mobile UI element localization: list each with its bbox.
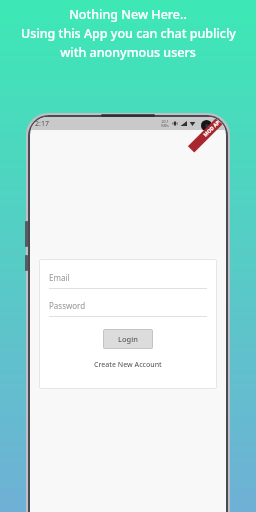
- button[interactable]: Login: [103, 329, 153, 349]
- staticText: MOD APK: [202, 117, 224, 138]
- staticText: 20.1 KB/s: [161, 119, 169, 128]
- button[interactable]: Create New Account: [88, 358, 168, 372]
- staticText: 2:17: [35, 119, 49, 129]
- staticText: Password: [49, 300, 86, 311]
- staticText: with anonymous users: [60, 44, 196, 61]
- button[interactable]: Password: [49, 300, 207, 317]
- staticText: Using this App you can chat publicly: [21, 25, 236, 42]
- staticText: Nothing New Here..: [69, 6, 187, 23]
- button[interactable]: Email: [49, 272, 207, 289]
- staticText: Create New Account: [94, 360, 162, 370]
- staticText: Login: [118, 334, 138, 344]
- staticText: Email: [49, 272, 70, 283]
